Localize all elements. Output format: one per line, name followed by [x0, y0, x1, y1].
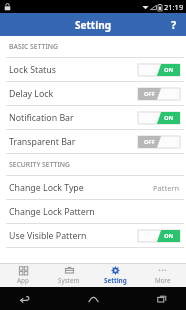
button[interactable]: Transparent Bar [0, 130, 186, 154]
button[interactable]: System [46, 264, 92, 287]
staticText: Change Lock Type [9, 182, 84, 194]
staticText: Use Visible Pattern [9, 230, 87, 242]
staticText: BASIC SETTING [9, 42, 59, 51]
staticText: 21:19 [164, 2, 184, 12]
button[interactable]: On [138, 112, 180, 124]
staticText: Change Lock Pattern [9, 206, 95, 218]
staticText: Setting [75, 18, 111, 32]
button[interactable]: Notification Bar [0, 106, 186, 130]
button[interactable]: Off [138, 88, 180, 100]
button[interactable]: Setting [92, 264, 139, 287]
staticText: ON [164, 114, 174, 122]
staticText: Lock Status [9, 64, 56, 76]
button[interactable]: Delay Lock [0, 82, 186, 106]
staticText: Transparent Bar [9, 136, 76, 148]
staticText: Pattern [153, 183, 180, 193]
button[interactable]: On [138, 230, 180, 242]
staticText: OFF [144, 138, 155, 146]
button[interactable]: Off [138, 136, 180, 148]
staticText: SECURITY SETTING [9, 160, 71, 169]
button[interactable]: Help [162, 13, 186, 36]
staticText: OFF [144, 90, 155, 98]
button[interactable]: Recent apps [152, 289, 172, 309]
button[interactable]: Change Lock Pattern [0, 200, 186, 224]
button[interactable]: More [139, 264, 186, 287]
staticText: Delay Lock [9, 88, 54, 100]
staticText: ON [164, 66, 174, 74]
staticText: ON [164, 232, 174, 240]
staticText: App [17, 276, 29, 285]
staticText: Notification Bar [9, 112, 74, 124]
button[interactable]: On [138, 64, 180, 76]
staticText: ? [171, 17, 177, 32]
staticText: System [58, 276, 80, 285]
button[interactable]: Home [83, 289, 103, 309]
staticText: More [155, 276, 171, 285]
button[interactable]: Use Visible Pattern [0, 224, 186, 248]
staticText: Setting [104, 276, 127, 285]
button[interactable]: Change Lock Type [0, 176, 186, 200]
button[interactable]: Lock Status [0, 58, 186, 82]
button[interactable]: App [0, 264, 46, 287]
button[interactable]: Back [14, 289, 34, 309]
